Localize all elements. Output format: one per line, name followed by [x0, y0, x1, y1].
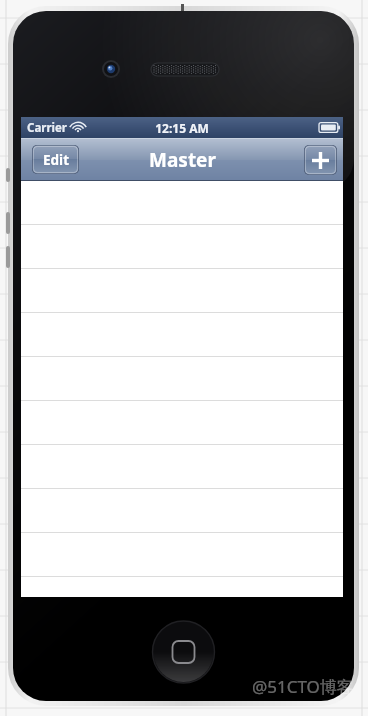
staticText: Carrier	[27, 120, 67, 136]
button[interactable]	[21, 401, 343, 445]
button[interactable]: Add	[304, 145, 337, 175]
button[interactable]	[21, 225, 343, 269]
staticText: @51CTO博客	[252, 675, 354, 698]
button[interactable]	[21, 181, 343, 225]
staticText: 12:15 AM	[155, 120, 209, 136]
staticText: Edit	[43, 151, 69, 169]
button[interactable]	[21, 357, 343, 401]
staticText: Master	[149, 147, 216, 173]
button[interactable]: Edit	[32, 145, 79, 174]
button[interactable]	[21, 269, 343, 313]
button[interactable]	[21, 313, 343, 357]
button[interactable]	[21, 489, 343, 533]
button[interactable]	[21, 533, 343, 577]
button[interactable]	[21, 445, 343, 489]
